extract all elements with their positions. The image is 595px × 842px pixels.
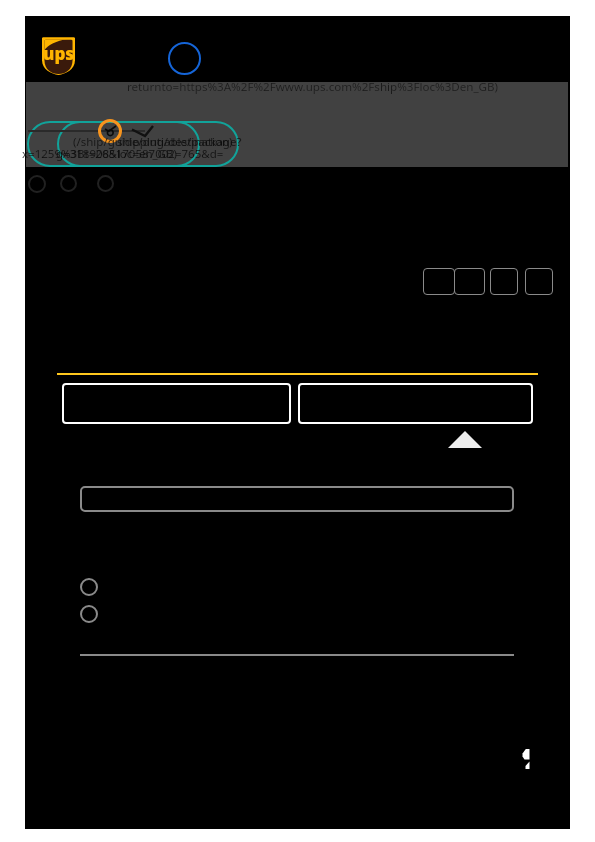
button[interactable] bbox=[80, 486, 514, 512]
staticText: (/ship/guide/dutiable/package? bbox=[73, 134, 242, 150]
button[interactable] bbox=[80, 578, 98, 596]
staticText: returnto=https%3A%2F%2Fwww.ups.com%2Fshi… bbox=[127, 79, 499, 95]
staticText: x=1259%3Bt=26&loc=en_GB) bbox=[22, 146, 177, 162]
button[interactable]: Option one bbox=[423, 268, 455, 295]
button[interactable]: Option three bbox=[490, 268, 518, 295]
button[interactable]: Primary action bbox=[62, 383, 291, 424]
button[interactable]: Option four bbox=[525, 268, 553, 295]
button[interactable]: Chip two bbox=[57, 121, 239, 167]
staticText: shipping/destination) bbox=[117, 134, 233, 150]
button[interactable]: Option two bbox=[454, 268, 485, 295]
button[interactable]: Chip one bbox=[27, 121, 200, 167]
button[interactable]: Secondary action bbox=[298, 383, 533, 424]
staticText: g=3189085170587002=765&d= bbox=[56, 146, 224, 162]
button[interactable] bbox=[80, 605, 98, 623]
staticText: ups bbox=[43, 42, 75, 65]
